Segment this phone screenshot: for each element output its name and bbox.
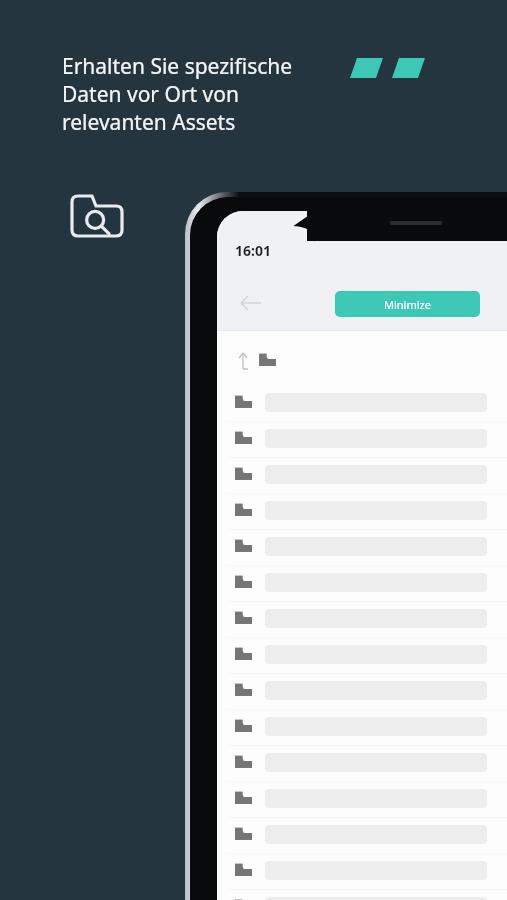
button[interactable] bbox=[217, 819, 507, 855]
button[interactable] bbox=[217, 459, 507, 495]
staticText: 16:01 bbox=[235, 241, 271, 260]
button[interactable] bbox=[217, 783, 507, 819]
button[interactable]: Search folder bbox=[66, 184, 128, 246]
button[interactable] bbox=[217, 855, 507, 891]
button[interactable]: Minimize bbox=[335, 291, 480, 317]
button[interactable] bbox=[217, 603, 507, 639]
button[interactable] bbox=[217, 675, 507, 711]
button[interactable] bbox=[217, 711, 507, 747]
button[interactable] bbox=[217, 639, 507, 675]
button[interactable] bbox=[217, 387, 507, 423]
button[interactable] bbox=[217, 567, 507, 603]
button[interactable] bbox=[217, 747, 507, 783]
button[interactable]: Back bbox=[231, 287, 271, 319]
staticText: Minimize bbox=[384, 297, 431, 312]
button[interactable] bbox=[217, 531, 507, 567]
button[interactable]: Up one level bbox=[235, 349, 295, 371]
staticText: Erhalten Sie spezifische Daten vor Ort v… bbox=[62, 52, 293, 136]
button[interactable] bbox=[217, 423, 507, 459]
button[interactable] bbox=[217, 495, 507, 531]
button[interactable] bbox=[217, 891, 507, 900]
